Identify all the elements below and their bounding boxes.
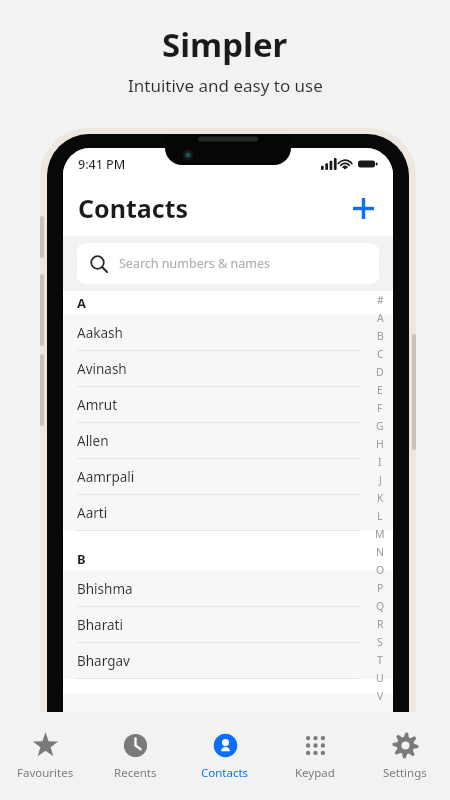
staticText: Recents	[114, 765, 157, 781]
staticText: Amrut	[77, 396, 118, 414]
staticText: Aamrpali	[77, 468, 135, 486]
staticText: C	[377, 347, 384, 361]
staticText: #	[377, 293, 384, 307]
staticText: Settings	[383, 765, 427, 781]
staticText: Simpler	[162, 22, 288, 67]
staticText: I	[378, 455, 382, 469]
button[interactable]: Search numbers & names	[77, 243, 379, 284]
button[interactable]: Favourites	[0, 712, 90, 800]
staticText: S	[377, 635, 383, 649]
staticText: T	[377, 653, 383, 667]
staticText: B	[77, 550, 86, 568]
staticText: M	[375, 527, 385, 541]
staticText: Aarti	[77, 504, 108, 522]
staticText: V	[377, 689, 384, 703]
button[interactable]: Bharati	[63, 607, 393, 643]
staticText: J	[379, 473, 382, 487]
button[interactable]: Aarti	[63, 495, 393, 531]
staticText: L	[377, 509, 383, 523]
staticText: U	[376, 671, 384, 685]
staticText: Contacts	[78, 191, 189, 225]
staticText: Aakash	[77, 324, 123, 342]
staticText: H	[376, 437, 384, 451]
staticText: Bhishma	[77, 580, 133, 598]
staticText: B	[377, 329, 384, 343]
button[interactable]: Keypad	[270, 712, 360, 800]
staticText: A	[377, 311, 384, 325]
staticText: Favourites	[17, 765, 74, 781]
button[interactable]: Add contact	[345, 190, 381, 226]
staticText: Search numbers & names	[119, 255, 270, 272]
staticText: P	[377, 581, 384, 595]
staticText: G	[376, 419, 384, 433]
button[interactable]: Allen	[63, 423, 393, 459]
button[interactable]: Settings	[360, 712, 450, 800]
button[interactable]: Bhargav	[63, 643, 393, 679]
button[interactable]: Amrut	[63, 387, 393, 423]
staticText: Contacts	[201, 765, 249, 781]
staticText: Q	[376, 599, 385, 613]
button[interactable]: Alphabet index	[367, 291, 393, 800]
button[interactable]: Aakash	[63, 315, 393, 351]
staticText: O	[376, 563, 385, 577]
staticText: N	[376, 545, 384, 559]
button[interactable]: Aamrpali	[63, 459, 393, 495]
staticText: Avinash	[77, 360, 127, 378]
button[interactable]: Avinash	[63, 351, 393, 387]
button[interactable]: Recents	[90, 712, 180, 800]
staticText: D	[376, 365, 384, 379]
staticText: F	[377, 401, 383, 415]
staticText: Bharati	[77, 616, 123, 634]
staticText: E	[377, 383, 383, 397]
staticText: Bhargav	[77, 652, 130, 670]
button[interactable]: Bhishma	[63, 571, 393, 607]
staticText: A	[77, 294, 86, 312]
staticText: R	[377, 617, 384, 631]
staticText: Allen	[77, 432, 109, 450]
button[interactable]: Contacts	[180, 712, 270, 800]
staticText: Keypad	[295, 765, 335, 781]
staticText: Intuitive and easy to use	[128, 74, 323, 97]
staticText: 9:41 PM	[78, 156, 126, 173]
staticText: K	[377, 491, 384, 505]
